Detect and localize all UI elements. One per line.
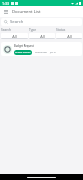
staticText: 1:33 [2, 1, 10, 6]
staticText: Pending Approval [15, 51, 31, 54]
staticText: All [12, 34, 17, 39]
staticText: Budget Request [14, 44, 34, 48]
staticText: All [67, 34, 72, 39]
button[interactable]: Type [29, 28, 55, 39]
button[interactable]: Menu [2, 8, 10, 16]
staticText: All [40, 34, 45, 39]
staticText: Jun 10 [50, 51, 56, 54]
staticText: Search [1, 28, 12, 32]
staticText: Finance Dept [35, 51, 47, 54]
staticText: Document List [12, 9, 41, 15]
button[interactable]: Status [56, 28, 82, 39]
staticText: Search [10, 19, 24, 25]
staticText: Status [56, 28, 66, 32]
button[interactable]: Budget Request [1, 42, 82, 56]
button[interactable]: Search [1, 28, 28, 39]
button[interactable]: Search [1, 18, 82, 26]
staticText: Type [29, 28, 37, 32]
